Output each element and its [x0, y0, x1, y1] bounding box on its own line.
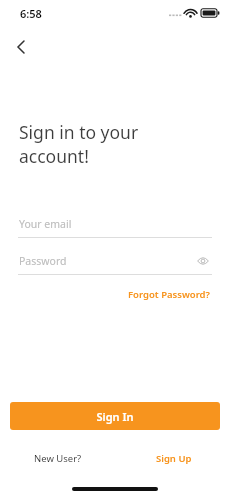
- button[interactable]: Forgot Password?: [126, 286, 212, 303]
- button[interactable]: Sign In: [10, 402, 220, 430]
- staticText: Sign in to your account!: [19, 120, 139, 168]
- staticText: 6:58: [20, 6, 42, 21]
- staticText: Forgot Password?: [128, 288, 210, 301]
- button[interactable]: Back: [6, 32, 36, 62]
- button[interactable]: New User?: [34, 452, 82, 465]
- staticText: Your email: [19, 217, 72, 231]
- button[interactable]: Show password: [194, 252, 212, 270]
- button[interactable]: Sign Up: [156, 452, 192, 465]
- staticText: New User?: [34, 452, 82, 465]
- staticText: Password: [19, 254, 67, 268]
- staticText: Sign In: [96, 409, 134, 424]
- staticText: Sign Up: [156, 452, 192, 465]
- button[interactable]: Password: [18, 251, 212, 275]
- button[interactable]: Your email: [18, 214, 212, 238]
